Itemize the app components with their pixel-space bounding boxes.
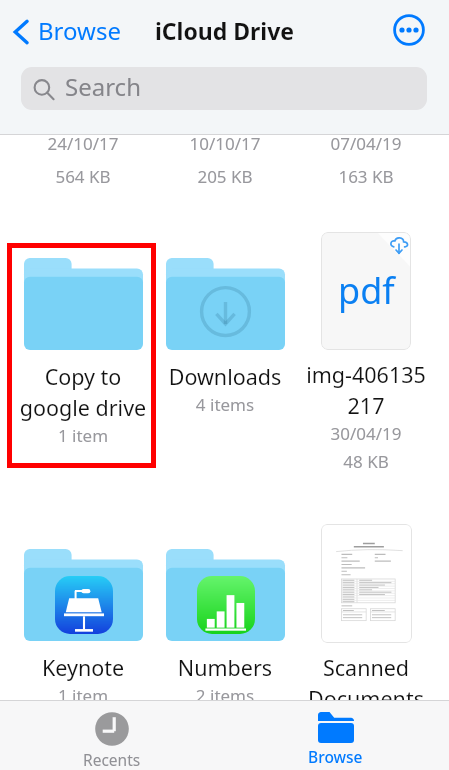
staticText: 07/04/19 (295, 132, 437, 155)
staticText: 30/04/19 48 KB (295, 422, 437, 473)
staticText: Browse (38, 14, 121, 47)
button[interactable]: Recents (37, 701, 186, 770)
staticText: Copy to google drive (12, 362, 154, 422)
button[interactable]: Browse (261, 701, 410, 770)
staticText: 24/10/17 (12, 132, 154, 155)
button[interactable]: Downloads (154, 244, 296, 416)
staticText: 1 item (12, 424, 154, 447)
staticText: Recents (83, 749, 141, 770)
button[interactable]: Browse (13, 15, 121, 48)
button[interactable]: Search (21, 67, 427, 110)
button[interactable]: More options (391, 12, 427, 48)
staticText: img-406135 217 (295, 360, 437, 420)
button[interactable]: Keynote (12, 535, 154, 707)
staticText: Scanned Documents (295, 653, 437, 713)
staticText: iCloud Drive (0, 15, 449, 46)
button[interactable]: Copy to google drive (12, 244, 154, 447)
button[interactable]: Numbers (154, 535, 296, 707)
staticText: 4 items (154, 393, 296, 416)
button[interactable]: pdf (295, 218, 437, 473)
staticText: Numbers (154, 653, 296, 682)
staticText: Keynote (12, 653, 154, 682)
staticText: 10/10/17 (154, 132, 296, 155)
staticText: 163 KB (295, 165, 437, 188)
staticText: 205 KB (154, 165, 296, 188)
staticText: Browse (308, 746, 363, 767)
staticText: 564 KB (12, 165, 154, 188)
staticText: 1 item (12, 684, 154, 707)
staticText: 2 items (154, 684, 296, 707)
button[interactable]: Scanned Documents (295, 510, 437, 713)
staticText: pdf (338, 266, 395, 315)
staticText: Search (65, 70, 141, 103)
staticText: Downloads (154, 362, 296, 391)
